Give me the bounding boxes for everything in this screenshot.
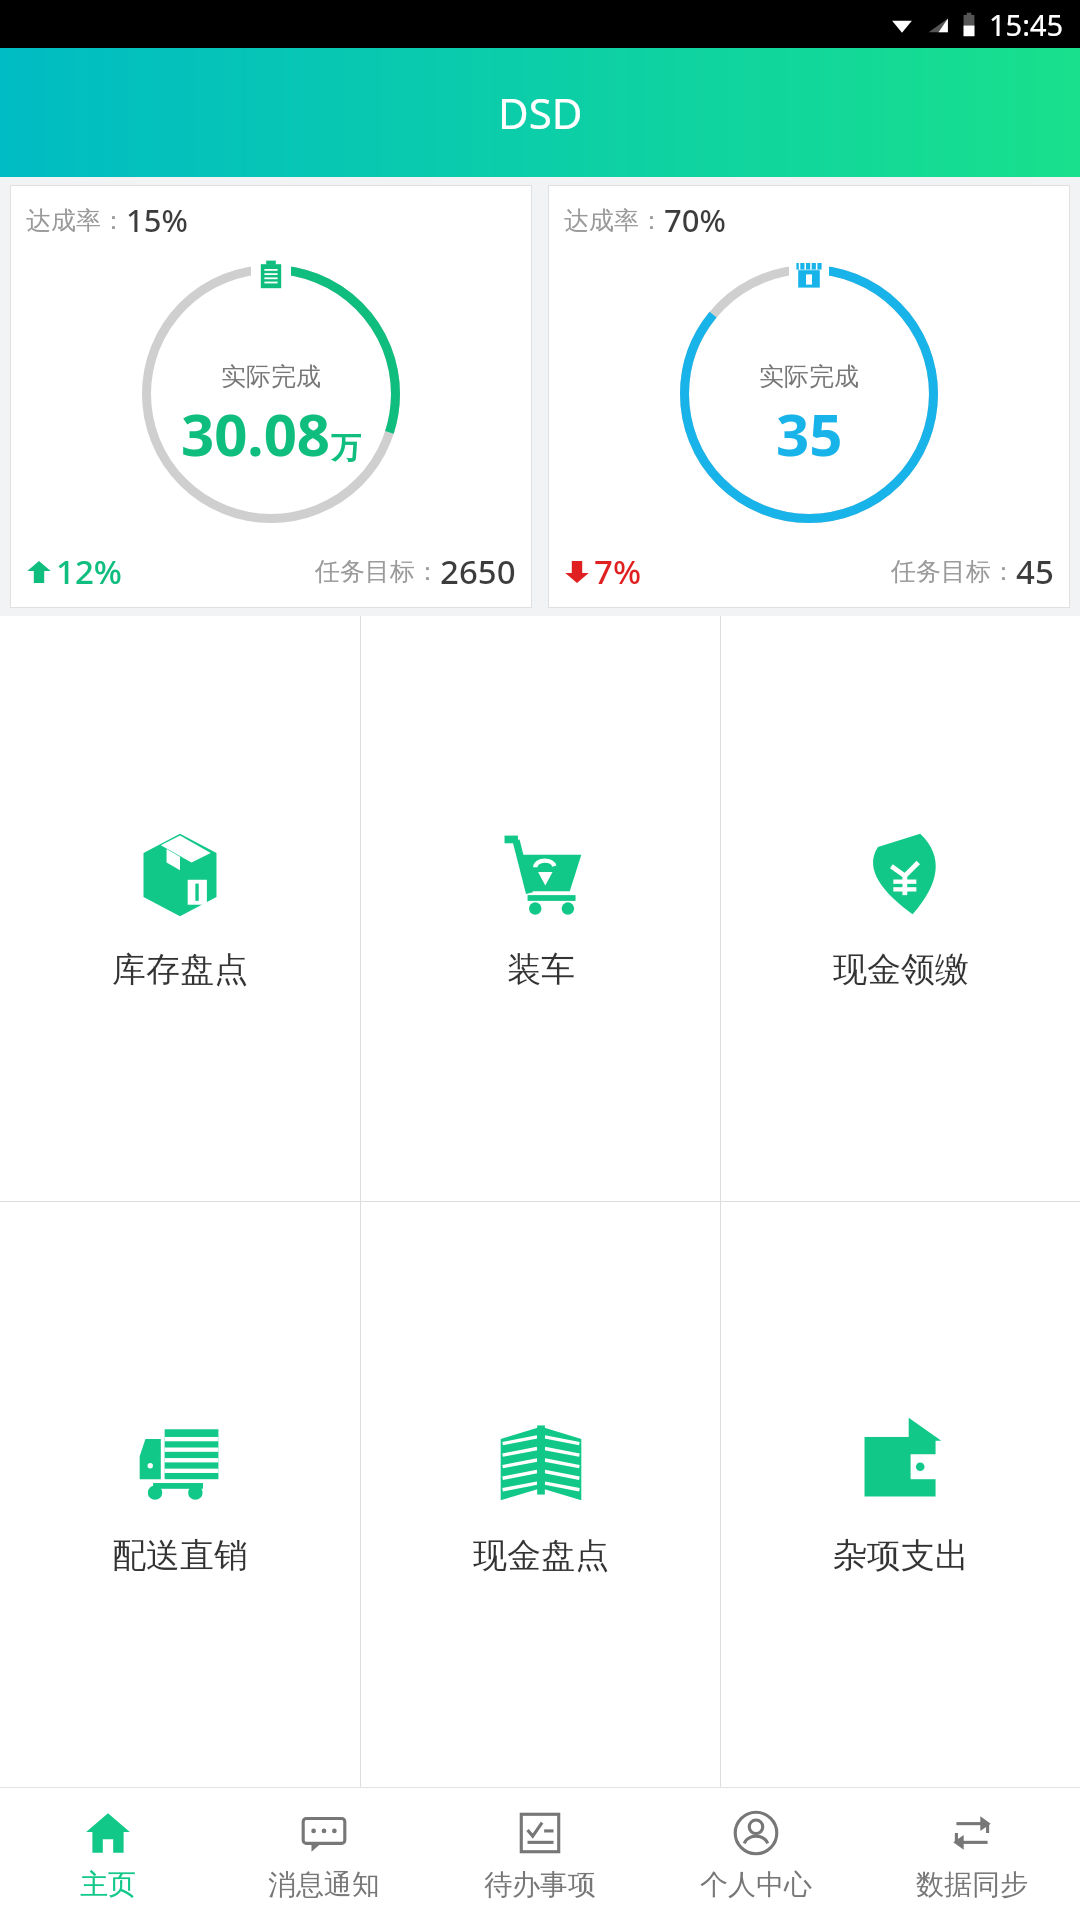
staticText: 实际完成 <box>759 361 859 392</box>
staticText: 库存盘点 <box>112 948 248 991</box>
staticText: 15:45 <box>989 5 1064 44</box>
staticText: 7% <box>594 549 641 594</box>
button[interactable]: 达成率： <box>10 185 532 608</box>
staticText: 个人中心 <box>700 1867 812 1902</box>
staticText: 达成率： <box>564 205 664 236</box>
staticText: 数据同步 <box>916 1867 1028 1902</box>
staticText: 30.08 <box>181 394 331 473</box>
staticText: 主页 <box>80 1867 136 1902</box>
staticText: 15% <box>126 199 188 241</box>
button[interactable]: 主页 <box>0 1788 216 1920</box>
button[interactable]: 待办事项 <box>432 1788 648 1920</box>
staticText: 现金领缴 <box>833 948 969 991</box>
staticText: 12% <box>56 549 122 594</box>
staticText: 35 <box>776 394 843 473</box>
button[interactable]: 消息通知 <box>216 1788 432 1920</box>
staticText: 2650 <box>440 549 516 594</box>
button[interactable]: 现金领缴 <box>721 616 1080 1201</box>
staticText: 达成率： <box>26 205 126 236</box>
button[interactable]: 装车 <box>361 616 720 1201</box>
button[interactable]: 库存盘点 <box>0 616 360 1201</box>
button[interactable]: 配送直销 <box>0 1202 360 1787</box>
staticText: 现金盘点 <box>473 1534 609 1577</box>
staticText: 70% <box>664 199 726 241</box>
staticText: DSD <box>498 84 583 141</box>
staticText: 45 <box>1016 549 1054 594</box>
button[interactable]: 现金盘点 <box>361 1202 720 1787</box>
staticText: 消息通知 <box>268 1867 380 1902</box>
button[interactable]: 达成率： <box>548 185 1070 608</box>
staticText: 装车 <box>507 948 575 991</box>
staticText: 待办事项 <box>484 1867 596 1902</box>
staticText: 实际完成 <box>221 361 321 392</box>
button[interactable]: 数据同步 <box>864 1788 1080 1920</box>
button[interactable]: 杂项支出 <box>721 1202 1080 1787</box>
staticText: 万 <box>331 429 361 467</box>
staticText: 配送直销 <box>112 1534 248 1577</box>
button[interactable]: 个人中心 <box>648 1788 864 1920</box>
staticText: 任务目标： <box>315 556 440 587</box>
staticText: 杂项支出 <box>833 1534 969 1577</box>
staticText: 任务目标： <box>891 556 1016 587</box>
